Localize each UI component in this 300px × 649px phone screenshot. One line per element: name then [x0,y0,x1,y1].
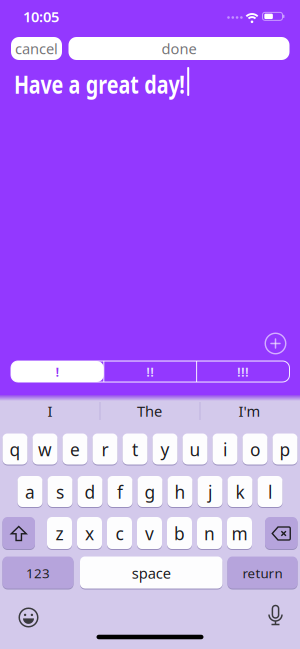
button[interactable]: space [80,556,222,589]
button[interactable]: d [77,476,102,508]
staticText: c [115,522,123,545]
button[interactable]: p [272,433,297,465]
staticText: j [208,480,212,503]
button[interactable]: i [212,433,237,465]
button[interactable]: e [62,433,87,465]
button[interactable]: return [227,556,297,589]
staticText: n [204,522,215,545]
button[interactable]: u [182,433,207,465]
button[interactable]: Dictate [267,605,283,627]
staticText: ! [55,363,59,380]
staticText: k [235,480,244,503]
button[interactable]: o [242,433,267,465]
staticText: t [132,438,138,461]
button[interactable]: x [77,517,102,550]
button[interactable]: h [167,476,192,508]
staticText: e [70,438,80,461]
staticText: a [25,480,35,503]
staticText: I'm [238,401,260,421]
button[interactable]: cancel [11,37,62,60]
button[interactable]: done [68,37,289,60]
staticText: r [101,438,108,461]
button[interactable]: n [197,517,222,550]
staticText: b [174,522,185,545]
staticText: Have a great day! [14,67,233,101]
staticText: w [38,438,52,461]
button[interactable]: Shift [2,517,35,550]
staticText: d [84,480,95,503]
button[interactable]: f [107,476,132,508]
staticText: u [189,438,200,461]
button[interactable]: ! [11,361,104,382]
button[interactable]: w [32,433,57,465]
staticText: f [117,480,123,503]
staticText: !! [146,363,154,380]
button[interactable]: z [47,517,72,550]
staticText: v [145,522,154,545]
button[interactable]: l [257,476,282,508]
button[interactable]: a [17,476,42,508]
staticText: o [250,438,260,461]
button[interactable]: r [92,433,117,465]
staticText: 10:05 [23,7,59,26]
button[interactable]: s [47,476,72,508]
staticText: y [160,438,169,461]
button[interactable]: v [137,517,162,550]
staticText: !!! [237,363,249,380]
staticText: g [144,480,155,503]
staticText: s [56,480,64,503]
button[interactable]: b [167,517,192,550]
staticText: I [47,401,52,421]
button[interactable]: !!! [197,361,289,382]
button[interactable]: Delete [265,517,297,550]
staticText: 123 [26,564,50,582]
button[interactable]: k [227,476,252,508]
button[interactable]: The [100,397,199,425]
staticText: i [223,438,227,461]
button[interactable]: I'm [200,397,299,425]
staticText: return [242,564,282,582]
staticText: cancel [15,39,58,58]
button[interactable]: t [122,433,147,465]
button[interactable]: y [152,433,177,465]
button[interactable]: m [227,517,252,550]
button[interactable]: !! [104,361,196,382]
staticText: p [279,438,290,461]
button[interactable]: Emoji [17,606,39,628]
staticText: m [231,522,247,545]
button[interactable]: q [2,433,27,465]
staticText: q [9,438,20,461]
staticText: h [174,480,185,503]
staticText: l [268,480,272,503]
button[interactable]: c [107,517,132,550]
staticText: The [137,401,162,421]
button[interactable]: Add [264,332,286,354]
button[interactable]: j [197,476,222,508]
staticText: space [132,563,171,583]
button[interactable]: 123 [2,556,73,589]
staticText: done [161,39,196,58]
button[interactable]: g [137,476,162,508]
staticText: x [85,522,94,545]
staticText: z [55,522,63,545]
button[interactable]: I [0,397,99,425]
